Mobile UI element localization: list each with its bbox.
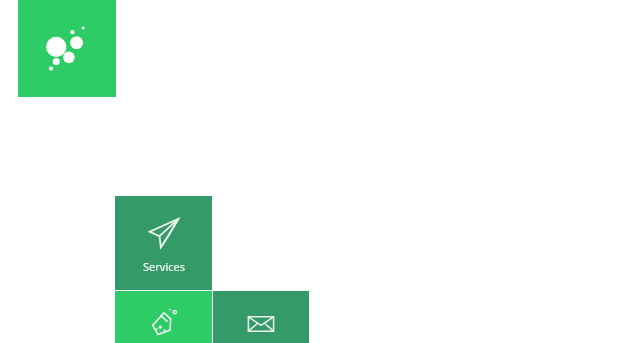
staticText: Services	[143, 259, 185, 274]
button[interactable]: Mail	[213, 291, 309, 343]
button[interactable]: App logo	[18, 0, 116, 97]
button[interactable]: Services	[115, 196, 212, 290]
button[interactable]: Lab	[115, 291, 212, 343]
